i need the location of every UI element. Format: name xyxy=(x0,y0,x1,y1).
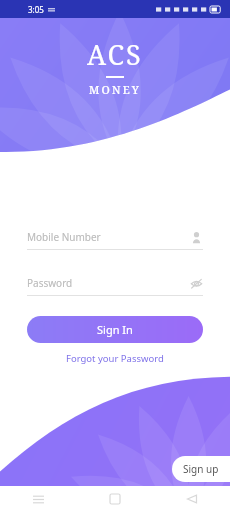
button[interactable]: Recents xyxy=(25,486,51,512)
staticText: 3:05 xyxy=(28,4,44,15)
button[interactable]: Sign In xyxy=(27,316,203,343)
staticText: Mobile Number xyxy=(27,230,190,244)
button[interactable]: Home xyxy=(102,486,128,512)
staticText: ACS xyxy=(87,36,143,73)
button[interactable]: Forgot your Password xyxy=(27,352,203,365)
other: Toggle password visibility xyxy=(190,277,203,290)
staticText: Sign In xyxy=(97,322,133,337)
staticText: MONEY xyxy=(89,82,141,97)
staticText: Forgot your Password xyxy=(66,352,164,365)
button[interactable]: Password xyxy=(27,274,203,296)
button[interactable]: Sign up xyxy=(172,456,230,482)
staticText: Password xyxy=(27,276,190,290)
button[interactable]: Mobile Number xyxy=(27,228,203,250)
other: User xyxy=(190,231,203,244)
staticText: Sign up xyxy=(183,462,219,476)
button[interactable]: Back xyxy=(179,486,205,512)
